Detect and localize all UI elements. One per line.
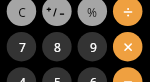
button[interactable]: Clear: [7, 0, 37, 27]
button[interactable]: 7: [7, 32, 37, 62]
staticText: 9: [90, 39, 97, 55]
button[interactable]: Multiply: [113, 32, 143, 62]
button[interactable]: Plus minus: [42, 0, 72, 27]
staticText: 5: [54, 74, 61, 82]
staticText: %: [87, 4, 97, 20]
button[interactable]: 4: [7, 67, 37, 82]
staticText: C: [18, 4, 26, 20]
button[interactable]: 9: [78, 32, 108, 62]
staticText: 8: [54, 39, 61, 55]
button[interactable]: Divide: [113, 0, 143, 27]
staticText: 6: [90, 74, 97, 82]
staticText: 7: [19, 39, 26, 55]
button[interactable]: Subtract: [113, 67, 143, 82]
button[interactable]: 8: [42, 32, 72, 62]
button[interactable]: 5: [42, 67, 72, 82]
button[interactable]: Percent: [78, 0, 108, 27]
button[interactable]: 6: [78, 67, 108, 82]
staticText: 4: [19, 74, 26, 82]
